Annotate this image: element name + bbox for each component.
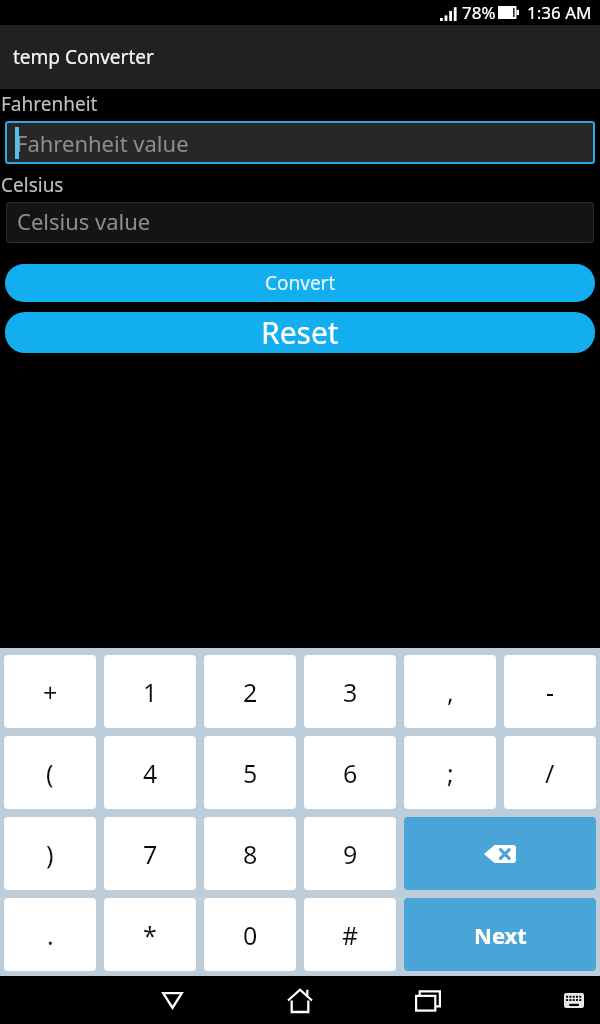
button[interactable]: 3 [304,655,396,728]
staticText: Fahrenheit [1,91,98,117]
staticText: 7 [143,837,158,871]
staticText: / [545,756,555,790]
button[interactable]: + [4,655,96,728]
button[interactable]: * [104,898,196,971]
staticText: 1 [143,675,158,709]
staticText: Fahrenheit value [16,128,189,158]
staticText: 8 [243,837,258,871]
staticText: 78% [462,1,496,24]
button[interactable]: 8 [204,817,296,890]
button[interactable]: 9 [304,817,396,890]
button[interactable]: . [4,898,96,971]
staticText: 4 [143,756,158,790]
button[interactable]: 1 [104,655,196,728]
staticText: Next [474,920,527,950]
staticText: ) [46,837,54,871]
button[interactable]: Backspace [404,817,596,890]
button[interactable]: Recent apps [393,976,463,1024]
staticText: Celsius [1,172,64,198]
button[interactable]: 7 [104,817,196,890]
staticText: Reset [261,312,339,353]
button[interactable]: Reset [5,312,595,353]
button[interactable]: Next [404,898,596,971]
staticText: 2 [243,675,258,709]
button[interactable]: Convert [5,264,595,302]
button[interactable]: 5 [204,736,296,809]
staticText: 3 [343,675,358,709]
staticText: * [143,918,157,952]
staticText: . [47,918,54,952]
staticText: 5 [243,756,258,790]
button[interactable]: 4 [104,736,196,809]
button[interactable]: Show keyboard [554,976,594,1024]
button[interactable]: 2 [204,655,296,728]
staticText: ( [46,756,54,790]
button[interactable]: ( [4,736,96,809]
button[interactable]: / [504,736,596,809]
staticText: temp Converter [13,44,154,70]
staticText: + [43,675,58,709]
button[interactable]: - [504,655,596,728]
button[interactable]: Celsius value [6,202,594,243]
button[interactable]: Fahrenheit value [5,121,595,164]
button[interactable]: Back [137,976,207,1024]
button[interactable]: , [404,655,496,728]
button[interactable]: ) [4,817,96,890]
staticText: 9 [343,837,358,871]
staticText: # [342,918,359,952]
staticText: - [546,675,555,709]
staticText: 6 [343,756,358,790]
staticText: , [447,675,454,709]
staticText: Celsius value [17,206,151,236]
staticText: Convert [265,270,336,296]
staticText: ; [447,756,454,790]
button[interactable]: ; [404,736,496,809]
button[interactable]: temp Converter [0,25,600,89]
staticText: 0 [243,918,258,952]
staticText: 1:36 AM [527,1,592,24]
button[interactable]: 0 [204,898,296,971]
button[interactable]: # [304,898,396,971]
button[interactable]: 6 [304,736,396,809]
button[interactable]: Home [265,976,335,1024]
